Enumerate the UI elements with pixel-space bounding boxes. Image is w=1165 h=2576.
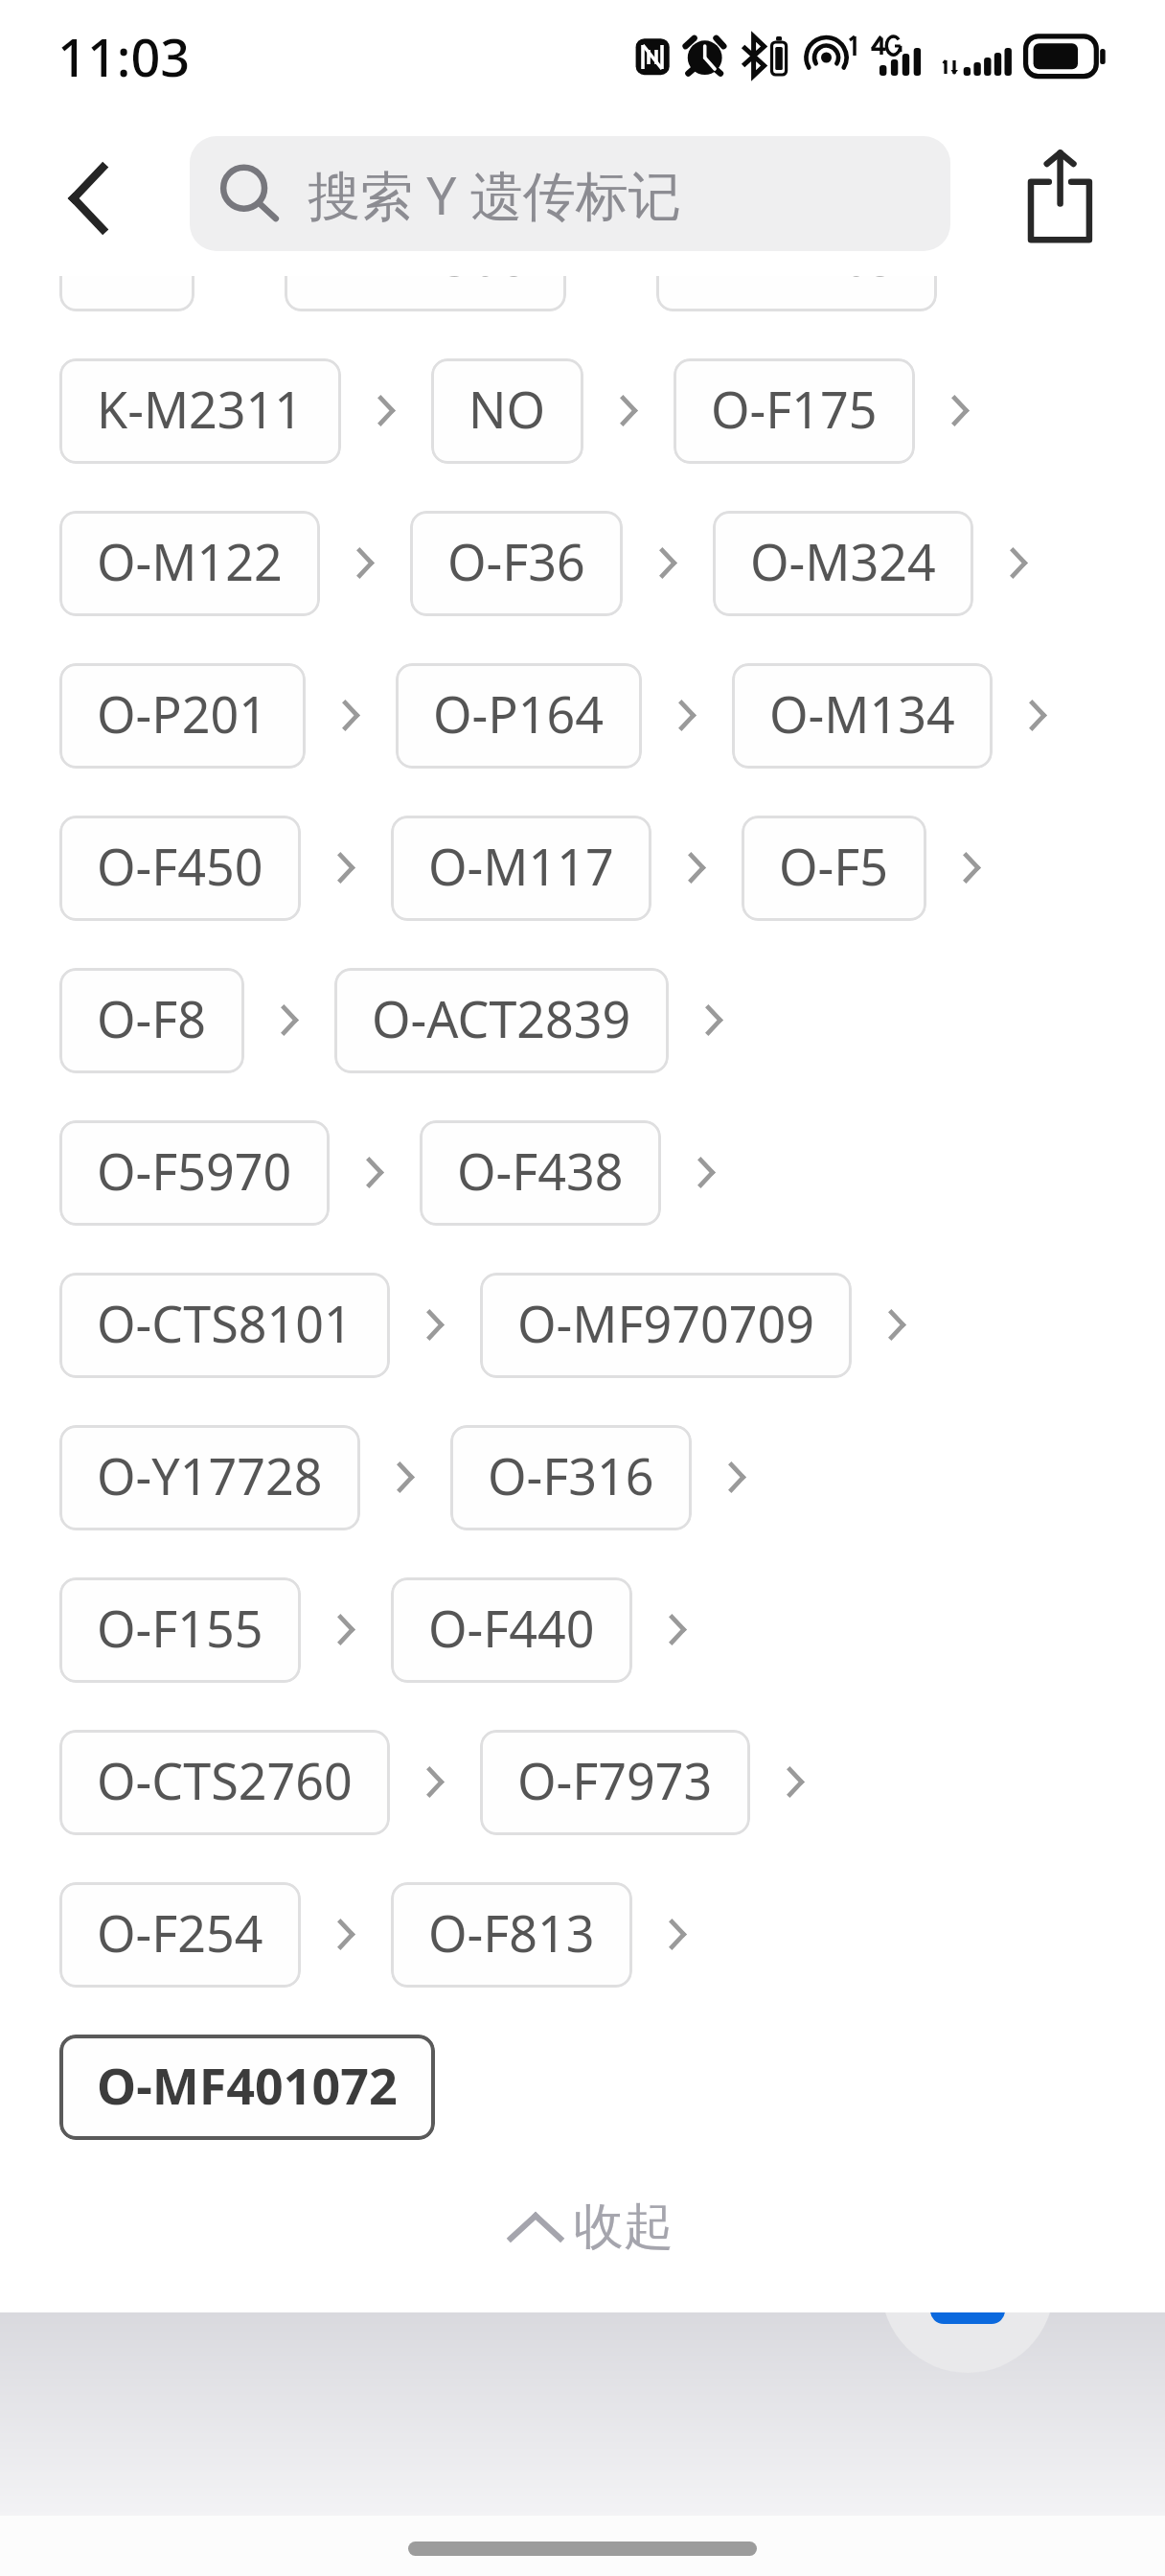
- staticText: O-MF401072: [97, 2051, 398, 2119]
- staticText: 收起: [574, 2196, 674, 2259]
- button[interactable]: O-Y17728: [59, 1425, 360, 1530]
- button[interactable]: O-F36: [410, 511, 623, 616]
- button[interactable]: O-F5: [742, 816, 926, 921]
- button[interactable]: O-F8: [59, 968, 244, 1073]
- staticText: A1: [97, 222, 157, 290]
- button[interactable]: O-P201: [59, 663, 306, 769]
- staticText: O-F5970: [97, 1137, 292, 1205]
- button[interactable]: Compare: [881, 2312, 1054, 2373]
- button[interactable]: O-F7973: [480, 1730, 750, 1835]
- staticText: O-F36: [447, 527, 585, 595]
- button[interactable]: O-M324: [713, 511, 973, 616]
- staticText: NO: [468, 375, 546, 443]
- button[interactable]: 收起: [0, 2163, 1165, 2290]
- staticText: O-ACT2839: [372, 984, 631, 1052]
- staticText: K-M2311: [97, 375, 304, 443]
- button[interactable]: O-CTS2760: [59, 1730, 390, 1835]
- staticText: 搜索 Y 遗传标记: [308, 158, 681, 230]
- staticText: O-F155: [97, 1594, 263, 1662]
- button[interactable]: K-M2311: [59, 358, 341, 464]
- button[interactable]: O-P164: [396, 663, 642, 769]
- staticText: O-F450: [97, 832, 263, 900]
- staticText: O-M122: [97, 527, 283, 595]
- staticText: O-F5: [779, 832, 889, 900]
- staticText: O-P201: [97, 679, 268, 747]
- button[interactable]: P-M1209: [656, 206, 937, 311]
- staticText: P-M1209: [694, 222, 900, 290]
- button[interactable]: Share: [993, 122, 1132, 256]
- staticText: O-M324: [750, 527, 936, 595]
- button[interactable]: 搜索 Y 遗传标记: [190, 136, 950, 251]
- staticText: O-F316: [488, 1441, 654, 1509]
- button[interactable]: O-M134: [732, 663, 993, 769]
- staticText: O-F254: [97, 1898, 263, 1966]
- button[interactable]: O-F316: [450, 1425, 692, 1530]
- button[interactable]: O-F155: [59, 1577, 301, 1683]
- staticText: O-M134: [769, 679, 955, 747]
- button[interactable]: O-F440: [391, 1577, 632, 1683]
- staticText: O-MF970709: [517, 1289, 814, 1357]
- staticText: O-F440: [428, 1594, 595, 1662]
- button[interactable]: O-F813: [391, 1882, 632, 1988]
- staticText: O-P164: [433, 679, 605, 747]
- staticText: O-M117: [428, 832, 614, 900]
- button[interactable]: A1: [59, 206, 194, 311]
- button[interactable]: O-M122: [59, 511, 320, 616]
- staticText: O-F7973: [517, 1746, 713, 1814]
- button[interactable]: O-F175: [674, 358, 915, 464]
- staticText: O-F8: [97, 984, 207, 1052]
- button[interactable]: O-F5970: [59, 1120, 330, 1226]
- button[interactable]: Back: [35, 134, 141, 263]
- button[interactable]: K-M2308: [285, 206, 566, 311]
- staticText: O-F438: [457, 1137, 624, 1205]
- button[interactable]: O-MF970709: [480, 1273, 852, 1378]
- staticText: O-CTS8101: [97, 1289, 353, 1357]
- button[interactable]: O-M117: [391, 816, 651, 921]
- staticText: O-F813: [428, 1898, 595, 1966]
- staticText: 11:03: [57, 21, 191, 92]
- button[interactable]: O-F254: [59, 1882, 301, 1988]
- button[interactable]: NO: [431, 358, 583, 464]
- staticText: O-CTS2760: [97, 1746, 353, 1814]
- staticText: O-Y17728: [97, 1441, 323, 1509]
- button[interactable]: O-MF401072: [59, 2035, 435, 2140]
- button[interactable]: O-F450: [59, 816, 301, 921]
- button[interactable]: O-F438: [420, 1120, 661, 1226]
- button[interactable]: O-CTS8101: [59, 1273, 390, 1378]
- staticText: K-M2308: [322, 222, 529, 290]
- staticText: O-F175: [711, 375, 878, 443]
- button[interactable]: O-ACT2839: [334, 968, 669, 1073]
